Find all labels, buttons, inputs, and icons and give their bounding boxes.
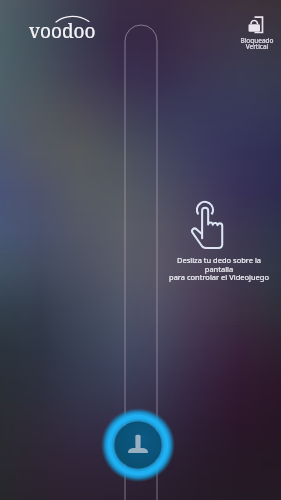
button[interactable]: Bloqueado Vertical — [238, 15, 276, 50]
staticText: Bloqueado Vertical — [240, 36, 274, 51]
staticText: Desliza tu dedo sobre la pantalla para c… — [162, 255, 276, 282]
button[interactable]: Conectar mando — [101, 408, 175, 482]
staticText: voodoo — [29, 18, 96, 44]
